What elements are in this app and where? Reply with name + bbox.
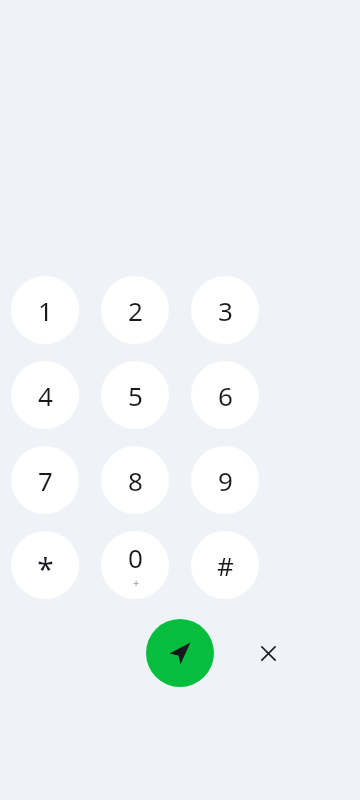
button[interactable]: 0	[101, 531, 169, 599]
staticText: 4	[38, 378, 53, 413]
staticText: 3	[218, 293, 233, 328]
button[interactable]: 4	[11, 361, 79, 429]
staticText: +	[133, 576, 139, 590]
staticText: 0	[128, 540, 143, 575]
staticText: #	[217, 548, 234, 583]
staticText: 5	[128, 378, 143, 413]
button[interactable]: Call	[146, 619, 214, 687]
button[interactable]: Close	[244, 629, 292, 677]
staticText: 6	[218, 378, 233, 413]
button[interactable]: 5	[101, 361, 169, 429]
button[interactable]: 9	[191, 446, 259, 514]
staticText: 9	[218, 463, 233, 498]
button[interactable]: 2	[101, 276, 169, 344]
staticText: 2	[128, 293, 143, 328]
staticText: 7	[38, 463, 53, 498]
button[interactable]: 8	[101, 446, 169, 514]
staticText: 8	[128, 463, 143, 498]
staticText: 1	[38, 293, 53, 328]
button[interactable]: *	[11, 531, 79, 599]
button[interactable]: 1	[11, 276, 79, 344]
button[interactable]: 7	[11, 446, 79, 514]
button[interactable]: #	[191, 531, 259, 599]
button[interactable]: 6	[191, 361, 259, 429]
staticText: *	[37, 548, 54, 589]
button[interactable]: 3	[191, 276, 259, 344]
